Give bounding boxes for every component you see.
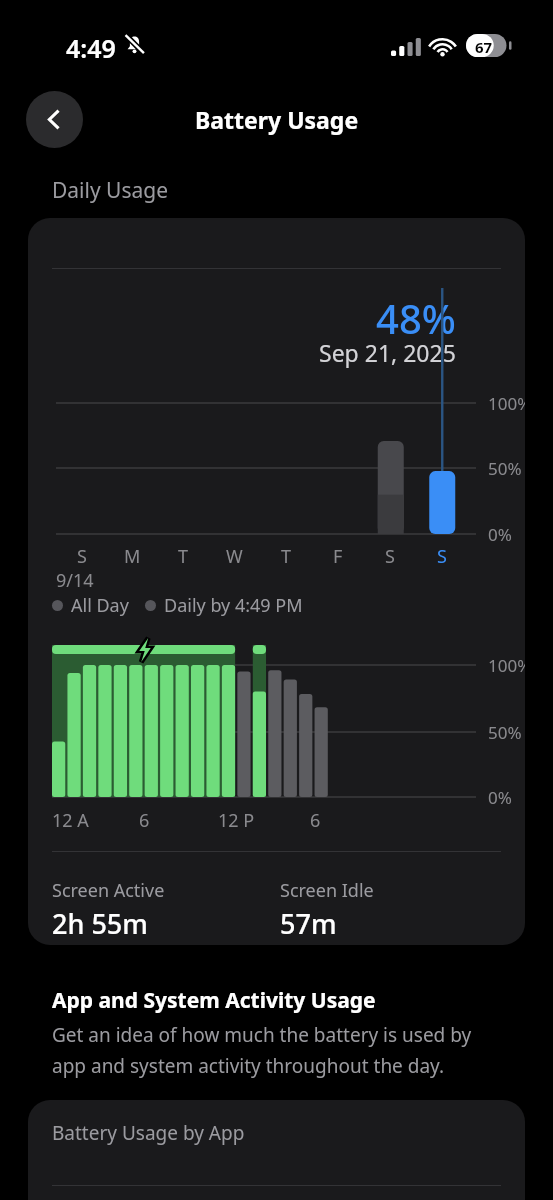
staticText: 57m <box>280 905 337 942</box>
staticText: 12 A <box>52 808 89 833</box>
staticText: M <box>124 544 141 569</box>
staticText: 12 P <box>218 808 255 833</box>
staticText: App and System Activity Usage <box>52 986 376 1015</box>
staticText: Screen Active <box>52 878 165 903</box>
staticText: 9/14 <box>56 568 94 593</box>
staticText: 6 <box>310 808 321 833</box>
staticText: F <box>333 544 343 569</box>
button[interactable]: Battery Usage by App <box>28 1100 525 1200</box>
staticText: Get an idea of how much the battery is u… <box>52 1022 472 1078</box>
staticText: Sep 21, 2025 <box>319 337 456 368</box>
staticText: S <box>385 544 395 569</box>
staticText: 4:49 <box>66 31 116 65</box>
staticText: S <box>437 544 447 569</box>
staticText: 0% <box>488 786 512 809</box>
staticText: T <box>178 544 189 569</box>
staticText: 100% <box>488 392 525 415</box>
staticText: Battery Usage by App <box>52 1120 245 1146</box>
staticText: Daily by 4:49 PM <box>164 593 303 618</box>
staticText: 50% <box>488 457 522 480</box>
staticText: 48% <box>376 291 456 343</box>
staticText: All Day <box>71 593 129 618</box>
staticText: 100% <box>488 654 525 677</box>
staticText: 0% <box>488 523 512 546</box>
staticText: 67 <box>475 37 493 57</box>
staticText: Screen Idle <box>280 878 374 903</box>
staticText: 50% <box>488 721 522 744</box>
button[interactable]: Back <box>26 91 83 148</box>
staticText: 2h 55m <box>52 905 148 942</box>
staticText: T <box>281 544 292 569</box>
staticText: Battery Usage <box>195 104 359 135</box>
staticText: Daily Usage <box>52 176 169 205</box>
staticText: W <box>226 544 243 569</box>
staticText: S <box>77 544 87 569</box>
staticText: 6 <box>139 808 150 833</box>
